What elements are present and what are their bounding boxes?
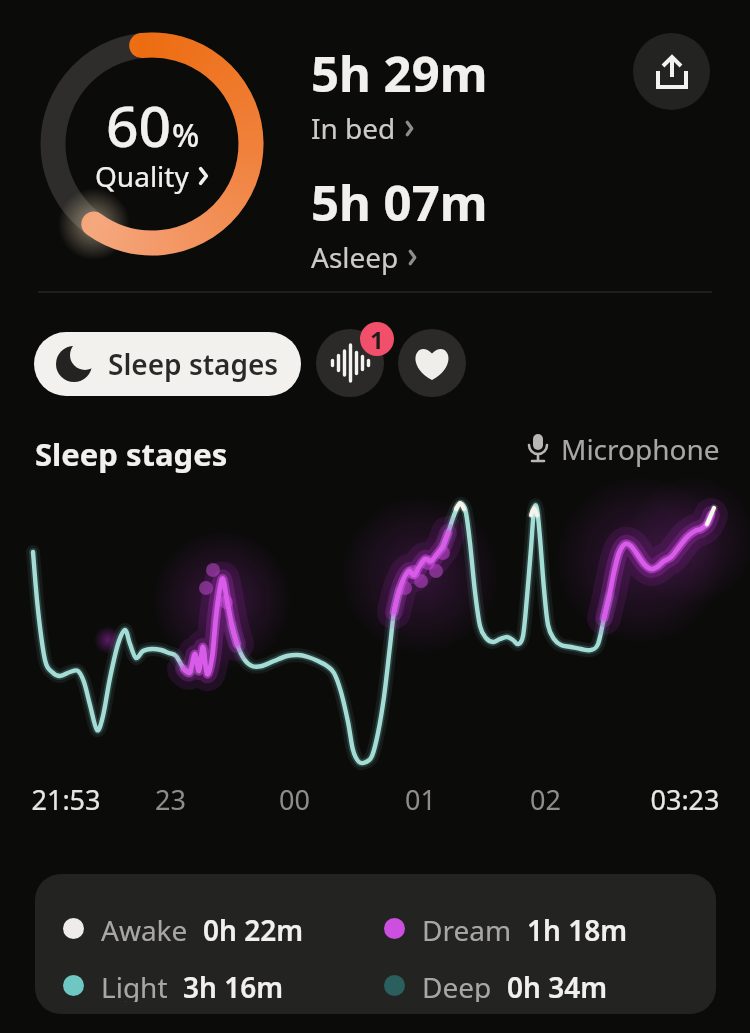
staticText: Microphone [561,430,720,468]
staticText: 3h 16m [183,968,284,1002]
button[interactable]: In bed [311,109,415,147]
staticText: 00 [279,781,310,818]
button[interactable]: 60 [40,32,264,256]
staticText: 60 [106,86,172,164]
staticText: Quality [95,157,189,195]
staticText: 5h 07m [311,169,488,236]
staticText: 0h 34m [507,968,608,1002]
staticText: Asleep [311,238,399,276]
staticText: % [172,113,200,157]
button[interactable]: Asleep [311,238,418,276]
staticText: 03:23 [650,781,720,818]
staticText: Dream [422,911,512,945]
staticText: 0h 22m [203,911,304,945]
staticText: 21:53 [31,781,101,818]
button[interactable]: Sleep stages [34,332,301,396]
button[interactable] [316,329,384,397]
staticText: Light [101,968,168,1002]
staticText: 01 [405,781,436,818]
staticText: In bed [311,109,396,147]
staticText: 23 [155,781,186,818]
button[interactable]: Microphone [527,430,720,468]
staticText: 1h 18m [527,911,628,945]
button[interactable] [398,329,466,397]
staticText: 5h 29m [311,40,488,107]
staticText: Sleep stages [35,433,228,475]
staticText: Deep [422,968,492,1002]
button[interactable] [633,33,710,110]
staticText: 1 [370,323,384,356]
staticText: Sleep stages [108,345,279,383]
staticText: 02 [530,781,561,818]
staticText: Awake [101,911,188,945]
